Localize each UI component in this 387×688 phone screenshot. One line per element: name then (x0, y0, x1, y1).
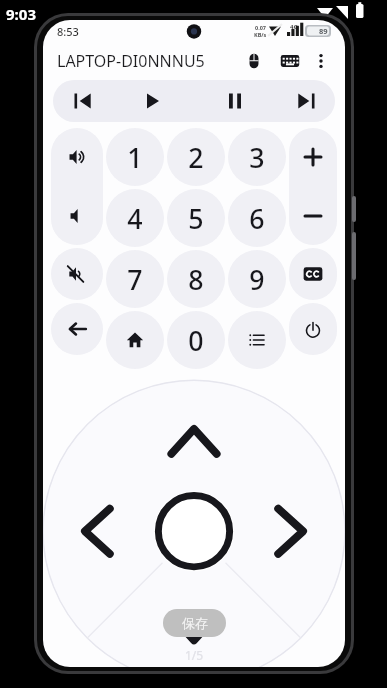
staticText: 89 (319, 26, 328, 36)
button[interactable]: Mouse (239, 46, 269, 76)
button[interactable]: Volume up (51, 128, 103, 186)
button[interactable]: 3 (228, 128, 286, 186)
staticText: 4G (290, 23, 298, 31)
button[interactable]: Volume down (51, 186, 103, 245)
button[interactable]: 6 (228, 189, 286, 247)
button[interactable]: 9 (228, 250, 286, 308)
button[interactable]: Previous (53, 80, 112, 122)
button[interactable]: Closed captions (289, 248, 337, 300)
staticText: 9 (249, 261, 265, 297)
staticText: 1 (127, 139, 143, 175)
button[interactable]: More options (307, 47, 335, 75)
button[interactable]: Menu (228, 311, 286, 369)
button[interactable]: Back (51, 303, 103, 355)
button[interactable]: 0 (167, 311, 225, 369)
button[interactable]: 7 (106, 250, 164, 308)
button[interactable]: Play (112, 80, 194, 122)
button[interactable]: 1 (106, 128, 164, 186)
button[interactable]: Channel up (289, 128, 337, 186)
button[interactable]: Power (289, 303, 337, 355)
staticText: 9:03 (6, 4, 36, 24)
button[interactable]: Keyboard (275, 46, 305, 76)
button[interactable]: 2 (167, 128, 225, 186)
button[interactable]: OK (158, 486, 230, 558)
staticText: 4 (127, 200, 143, 236)
staticText: KB/s (254, 31, 267, 38)
button[interactable]: Next (276, 80, 335, 122)
button[interactable]: Mute (51, 248, 103, 300)
staticText: 6 (249, 200, 265, 236)
staticText: 0 (188, 322, 204, 358)
staticText: 8:53 (57, 24, 79, 39)
staticText: 1/5 (185, 647, 204, 663)
staticText: 2 (188, 139, 204, 175)
staticText: 3 (249, 139, 265, 175)
staticText: LAPTOP-DI0NNNU5 (57, 50, 205, 72)
button[interactable]: 5 (167, 189, 225, 247)
staticText: 5 (188, 200, 204, 236)
button[interactable]: Home (106, 311, 164, 369)
staticText: 8 (188, 261, 204, 297)
staticText: 7 (127, 261, 143, 297)
button[interactable]: 8 (167, 250, 225, 308)
button[interactable]: Pause (194, 80, 276, 122)
staticText: 保存 (182, 615, 208, 631)
staticText: 0.07 (255, 24, 266, 31)
button[interactable]: 4 (106, 189, 164, 247)
button[interactable]: Channel down (289, 186, 337, 245)
